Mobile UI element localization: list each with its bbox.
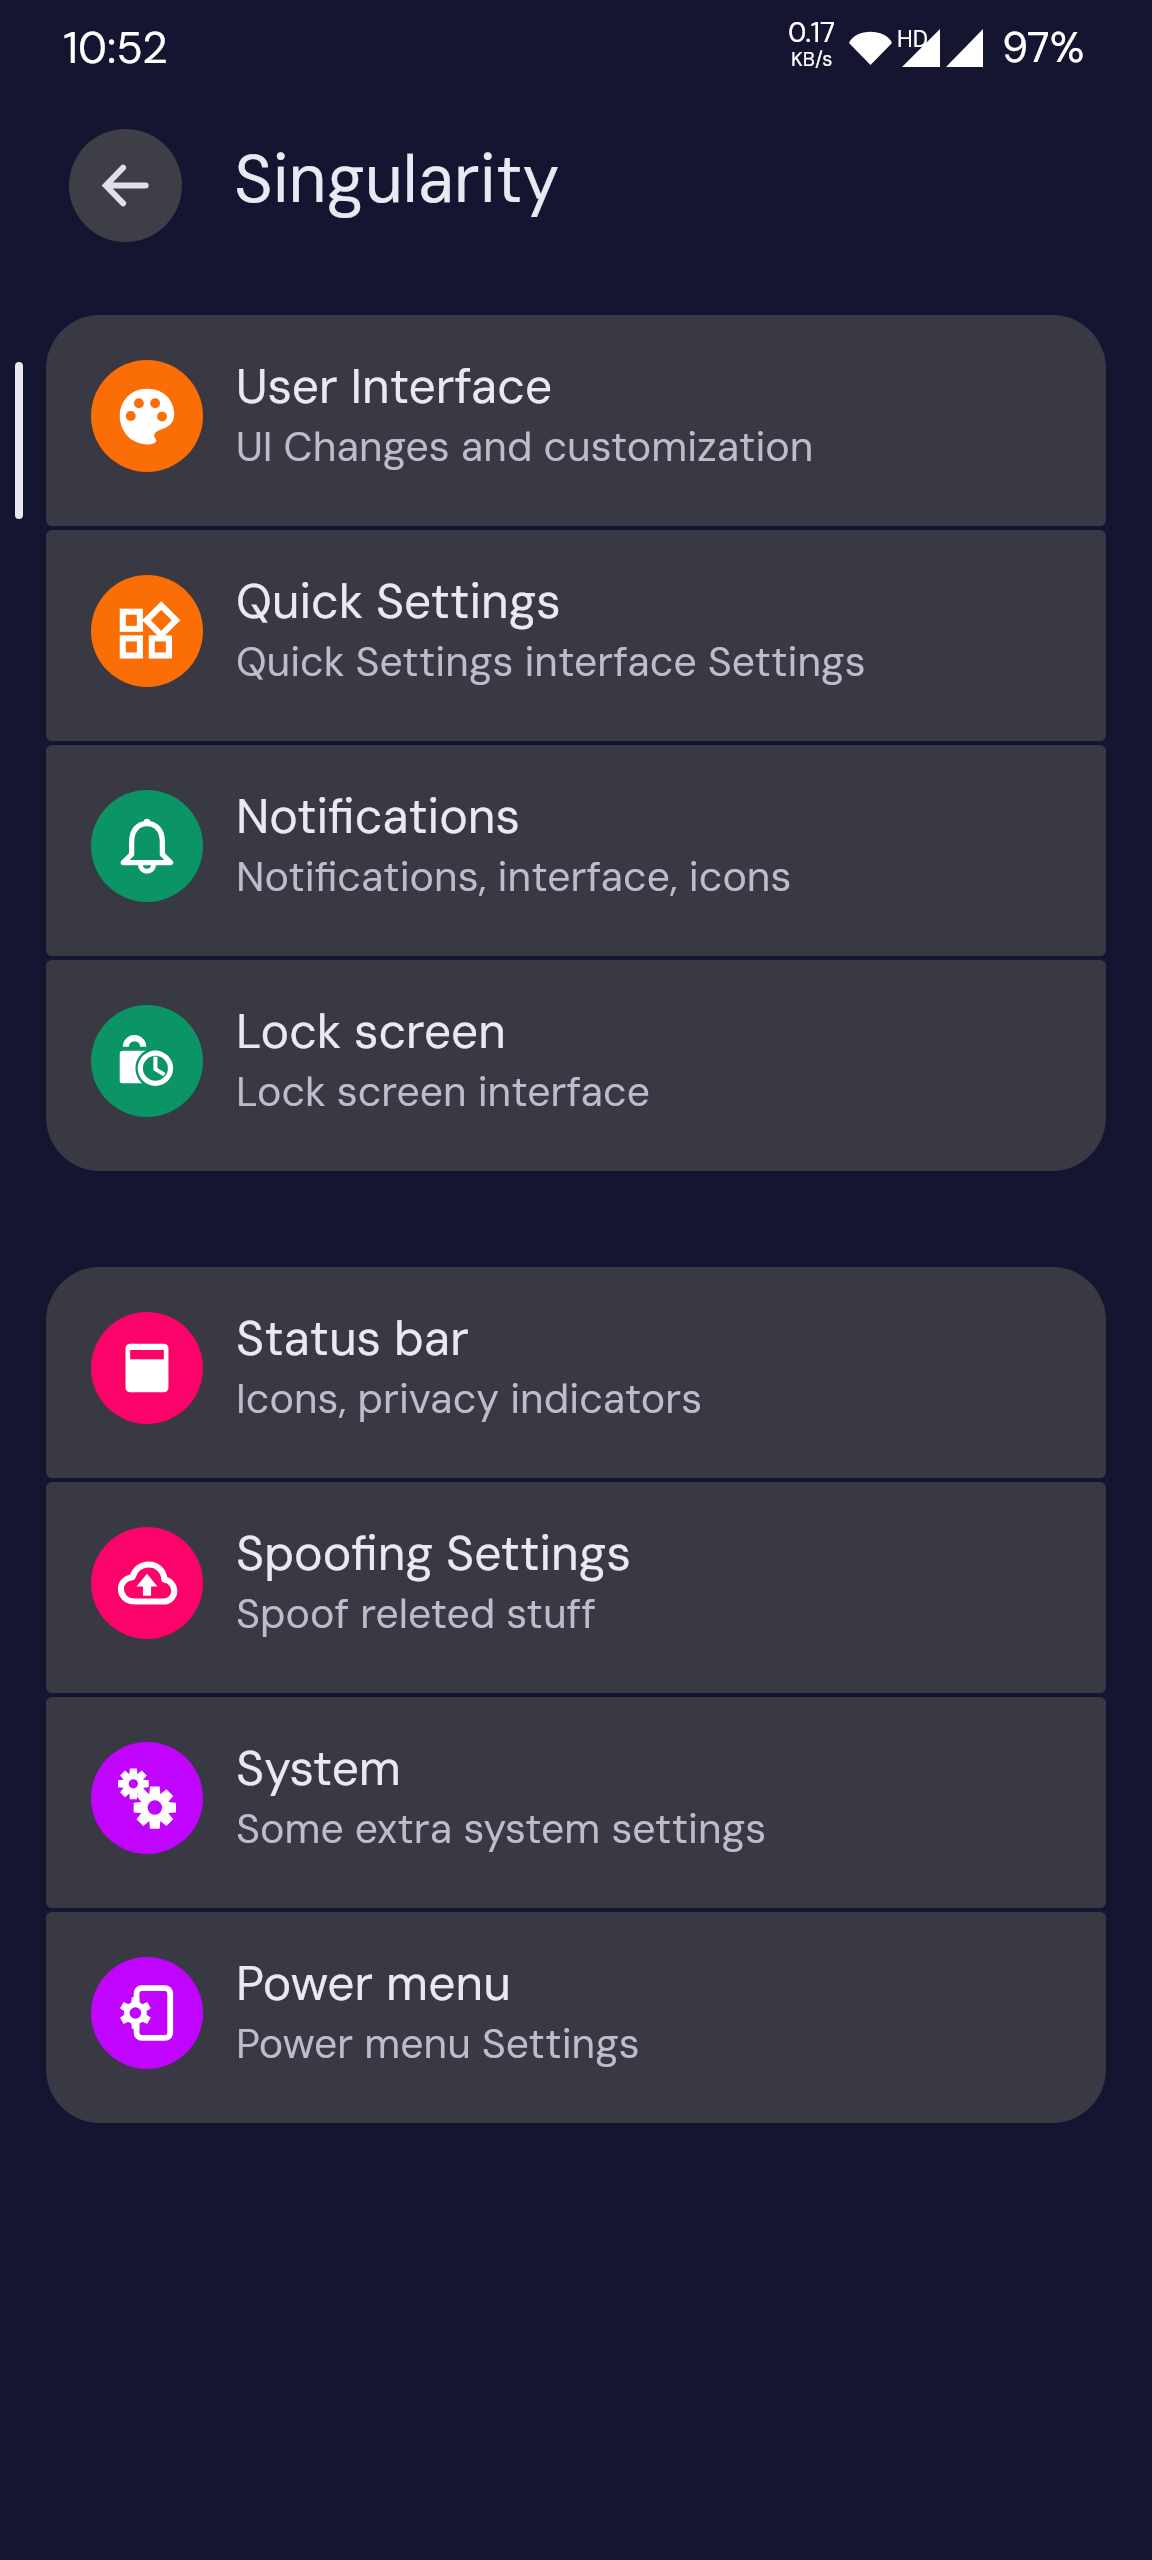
- staticText: Notifications: [236, 785, 521, 847]
- button[interactable]: Status bar: [46, 1267, 1106, 1478]
- staticText: 0.17: [788, 14, 836, 50]
- staticText: User Interface: [236, 355, 553, 417]
- staticText: UI Changes and customization: [236, 420, 814, 473]
- button[interactable]: Notifications: [46, 745, 1106, 956]
- staticText: Singularity: [234, 137, 560, 223]
- staticText: Icons, privacy indicators: [236, 1372, 703, 1425]
- staticText: Power menu Settings: [236, 2017, 640, 2070]
- button[interactable]: Spoofing Settings: [46, 1482, 1106, 1693]
- staticText: 10:52: [63, 19, 168, 76]
- staticText: Spoof releted stuff: [236, 1587, 597, 1640]
- staticText: Some extra system settings: [236, 1802, 767, 1855]
- button[interactable]: Quick Settings: [46, 530, 1106, 741]
- staticText: Lock screen interface: [236, 1065, 650, 1118]
- staticText: 97%: [1002, 20, 1085, 75]
- staticText: HD: [897, 24, 929, 54]
- staticText: System: [236, 1737, 402, 1799]
- staticText: Quick Settings: [236, 570, 561, 632]
- staticText: Status bar: [236, 1307, 469, 1369]
- button[interactable]: Back: [69, 129, 182, 242]
- button[interactable]: Lock screen: [46, 960, 1106, 1171]
- staticText: Lock screen: [236, 1000, 507, 1062]
- staticText: Notifications, interface, icons: [236, 850, 792, 903]
- staticText: Quick Settings interface Settings: [236, 635, 866, 688]
- button[interactable]: User Interface: [46, 315, 1106, 526]
- button[interactable]: System: [46, 1697, 1106, 1908]
- staticText: Spoofing Settings: [236, 1522, 631, 1584]
- button[interactable]: Power menu: [46, 1912, 1106, 2123]
- staticText: KB/s: [791, 46, 833, 72]
- staticText: Power menu: [236, 1952, 511, 2014]
